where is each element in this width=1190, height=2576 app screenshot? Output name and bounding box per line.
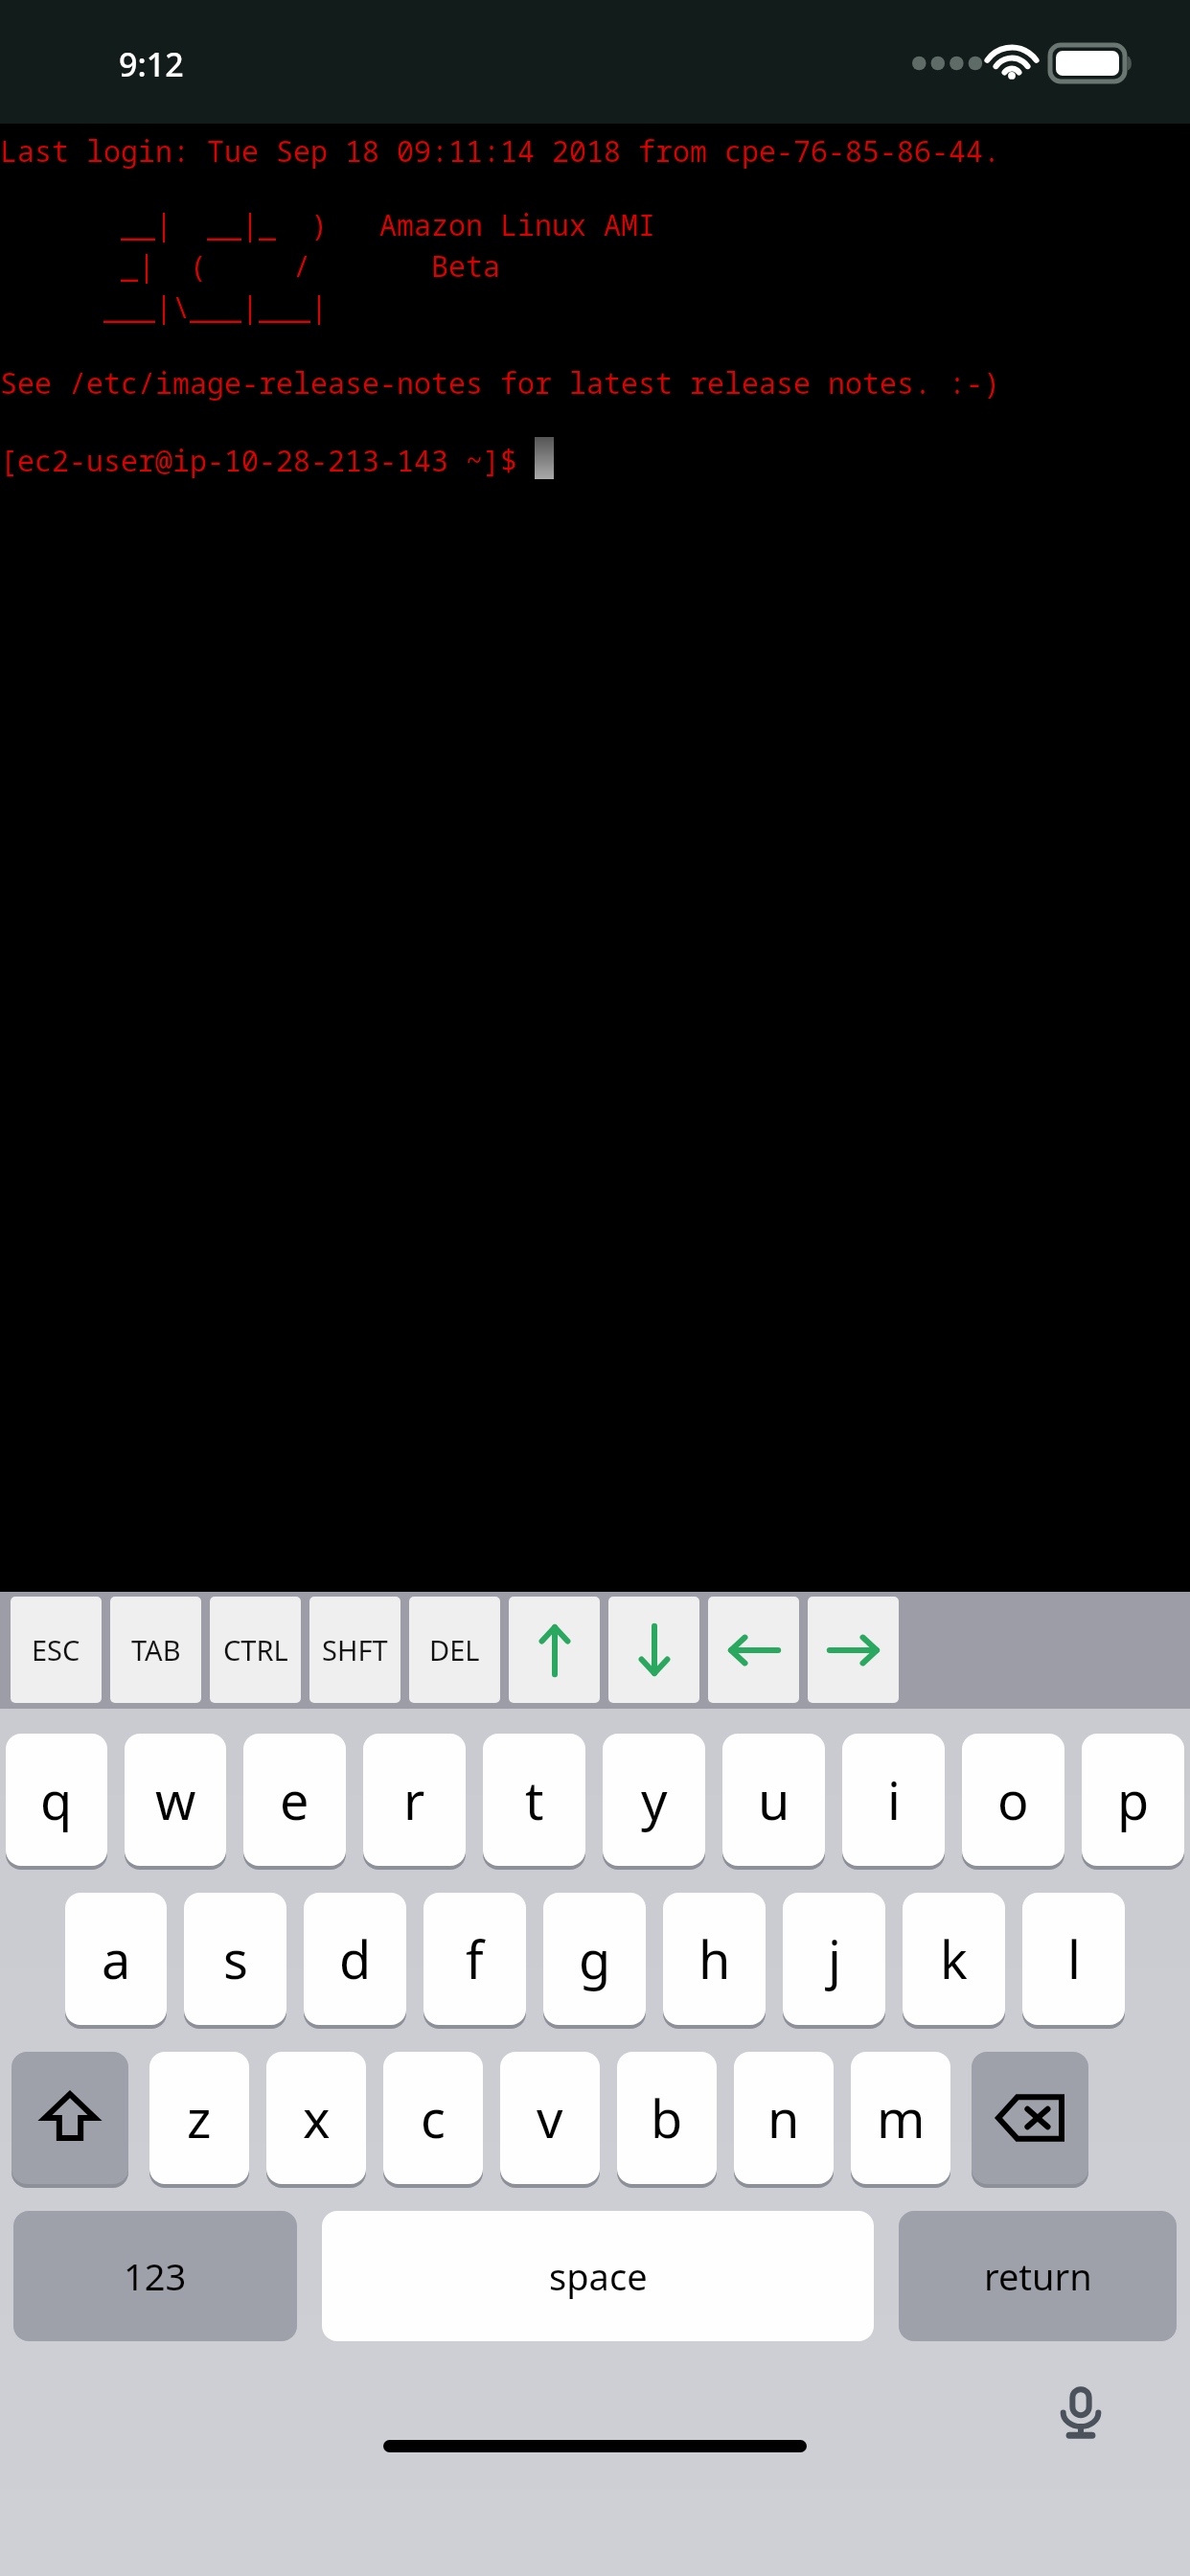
staticText: g bbox=[579, 1923, 611, 1994]
staticText: app2.comcsoft.com bbox=[314, 151, 738, 214]
staticText: z bbox=[187, 2082, 212, 2153]
staticText: o bbox=[997, 1764, 1029, 1835]
button[interactable]: return bbox=[899, 2211, 1177, 2341]
button[interactable]: space bbox=[322, 2211, 874, 2341]
button[interactable]: left bbox=[708, 1597, 799, 1703]
button[interactable]: w bbox=[125, 1734, 226, 1866]
staticText: n bbox=[767, 2082, 800, 2153]
staticText: e bbox=[280, 1764, 309, 1835]
button[interactable]: TAB bbox=[110, 1597, 201, 1703]
button[interactable]: CTRL bbox=[210, 1597, 301, 1703]
button[interactable]: right bbox=[808, 1597, 899, 1703]
staticText: See /etc/image-release-notes for latest … bbox=[0, 363, 1000, 402]
button[interactable]: u bbox=[722, 1734, 825, 1866]
button[interactable]: SHFT bbox=[309, 1597, 400, 1703]
button[interactable]: ESC bbox=[11, 1597, 102, 1703]
button[interactable]: n bbox=[734, 2052, 834, 2184]
staticText: _| ( / Beta bbox=[0, 246, 500, 286]
staticText: m bbox=[877, 2082, 926, 2153]
staticText: a bbox=[102, 1923, 131, 1994]
staticText: p bbox=[1117, 1764, 1150, 1835]
button[interactable]: Dictate bbox=[1042, 2375, 1119, 2451]
button[interactable]: p bbox=[1082, 1734, 1184, 1866]
button[interactable]: f bbox=[423, 1893, 526, 2025]
button[interactable]: Crop bbox=[973, 151, 1030, 209]
staticText: b bbox=[651, 2082, 683, 2153]
button[interactable]: b bbox=[617, 2052, 717, 2184]
button[interactable]: o bbox=[962, 1734, 1064, 1866]
staticText: i bbox=[887, 1764, 901, 1835]
staticText: y bbox=[641, 1764, 668, 1835]
button[interactable]: y bbox=[603, 1734, 705, 1866]
staticText: SHFT bbox=[322, 1631, 388, 1668]
button[interactable]: h bbox=[663, 1893, 766, 2025]
button[interactable]: z bbox=[149, 2052, 249, 2184]
button[interactable]: m bbox=[851, 2052, 950, 2184]
staticText: TAB bbox=[131, 1631, 181, 1668]
staticText: l bbox=[1067, 1923, 1081, 1994]
staticText: [ec2-user@ip-10-28-213-143 ~]$ bbox=[0, 441, 535, 480]
button[interactable]: DEL bbox=[409, 1597, 500, 1703]
staticText: x bbox=[303, 2082, 331, 2153]
button[interactable]: 123 bbox=[13, 2211, 297, 2341]
staticText: f bbox=[466, 1923, 484, 1994]
button[interactable]: r bbox=[363, 1734, 466, 1866]
button[interactable]: l bbox=[1022, 1893, 1125, 2025]
staticText: ESC bbox=[32, 1631, 80, 1668]
button[interactable]: j bbox=[783, 1893, 885, 2025]
staticText: s bbox=[223, 1923, 248, 1994]
button[interactable]: up bbox=[509, 1597, 600, 1703]
staticText: space bbox=[549, 2251, 648, 2301]
button[interactable]: i bbox=[842, 1734, 945, 1866]
button[interactable]: down bbox=[608, 1597, 699, 1703]
staticText: ___|\___|___| bbox=[0, 287, 328, 327]
staticText: 9:12 bbox=[119, 42, 184, 86]
button[interactable]: Backspace bbox=[972, 2052, 1088, 2184]
staticText: d bbox=[339, 1923, 372, 1994]
button[interactable]: t bbox=[483, 1734, 585, 1866]
staticText: h bbox=[698, 1923, 731, 1994]
button[interactable]: Back bbox=[44, 155, 176, 210]
staticText: DEL bbox=[429, 1631, 480, 1668]
staticText: __| __|_ ) Amazon Linux AMI bbox=[0, 205, 655, 244]
staticText: t bbox=[525, 1764, 544, 1835]
button[interactable]: c bbox=[383, 2052, 483, 2184]
staticText: Last login: Tue Sep 18 09:11:14 2018 fro… bbox=[0, 131, 1000, 171]
button[interactable]: g bbox=[543, 1893, 646, 2025]
button[interactable]: q bbox=[6, 1734, 107, 1866]
button[interactable]: a bbox=[65, 1893, 167, 2025]
staticText: c bbox=[421, 2082, 446, 2153]
button[interactable]: e bbox=[243, 1734, 346, 1866]
button[interactable]: d bbox=[304, 1893, 406, 2025]
button[interactable]: k bbox=[903, 1893, 1005, 2025]
button[interactable]: Shift bbox=[11, 2052, 128, 2184]
staticText: j bbox=[828, 1923, 841, 1994]
staticText: q bbox=[40, 1764, 73, 1835]
staticText: v bbox=[537, 2082, 563, 2153]
button[interactable]: v bbox=[500, 2052, 600, 2184]
button[interactable]: s bbox=[184, 1893, 286, 2025]
staticText: 123 bbox=[124, 2251, 187, 2301]
staticText: return bbox=[984, 2251, 1092, 2301]
staticText: w bbox=[155, 1764, 196, 1835]
staticText: Back bbox=[82, 155, 172, 210]
staticText: CTRL bbox=[223, 1631, 288, 1668]
staticText: r bbox=[403, 1764, 425, 1835]
staticText: u bbox=[758, 1764, 790, 1835]
staticText: k bbox=[940, 1923, 968, 1994]
button[interactable]: x bbox=[266, 2052, 366, 2184]
